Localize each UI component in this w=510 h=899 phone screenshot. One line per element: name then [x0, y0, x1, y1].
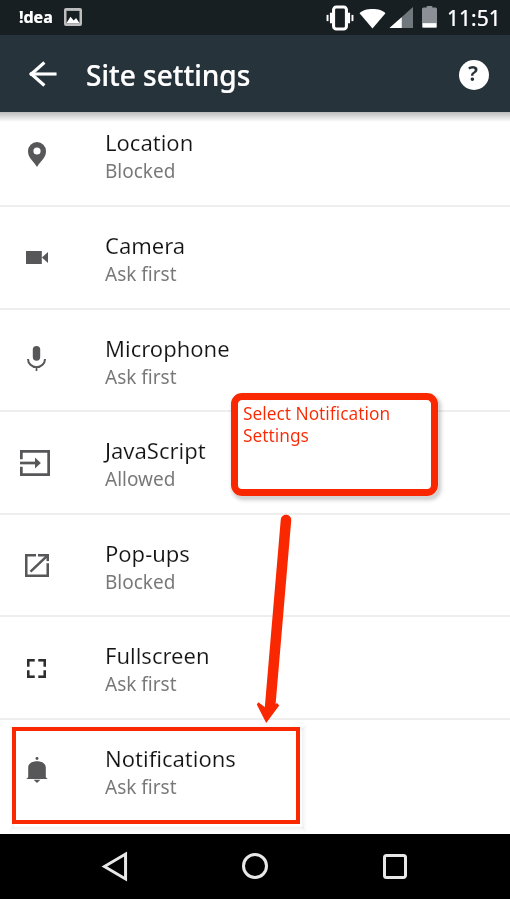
staticText: Pop-ups: [105, 538, 190, 568]
staticText: !dea: [19, 6, 53, 28]
button[interactable]: JavaScript: [0, 411, 510, 514]
staticText: Ask first: [105, 774, 177, 800]
staticText: 11:51: [447, 4, 501, 33]
button[interactable]: Camera: [0, 206, 510, 309]
staticText: Select Notification Settings: [243, 402, 391, 447]
staticText: Location: [105, 127, 194, 157]
staticText: Ask first: [105, 261, 177, 287]
button[interactable]: Navigate up: [19, 55, 64, 93]
button[interactable]: Notifications: [0, 719, 510, 822]
staticText: Site settings: [86, 56, 251, 94]
staticText: Microphone: [105, 333, 230, 363]
button[interactable]: Back: [94, 845, 136, 887]
staticText: JavaScript: [105, 435, 206, 465]
button[interactable]: Home: [234, 845, 276, 887]
staticText: Camera: [105, 230, 186, 260]
button[interactable]: Microphone: [0, 309, 510, 412]
button[interactable]: Recent apps: [374, 845, 416, 887]
staticText: ?: [468, 59, 479, 88]
staticText: Ask first: [105, 364, 177, 390]
staticText: Blocked: [105, 569, 176, 595]
staticText: Blocked: [105, 158, 176, 184]
staticText: Fullscreen: [105, 640, 210, 670]
button[interactable]: Pop-ups: [0, 514, 510, 617]
button[interactable]: Location: [0, 103, 510, 206]
button[interactable]: Fullscreen: [0, 616, 510, 719]
button[interactable]: Help: [453, 54, 494, 95]
staticText: Allowed: [105, 466, 176, 492]
staticText: Notifications: [105, 743, 236, 773]
staticText: Ask first: [105, 671, 177, 697]
